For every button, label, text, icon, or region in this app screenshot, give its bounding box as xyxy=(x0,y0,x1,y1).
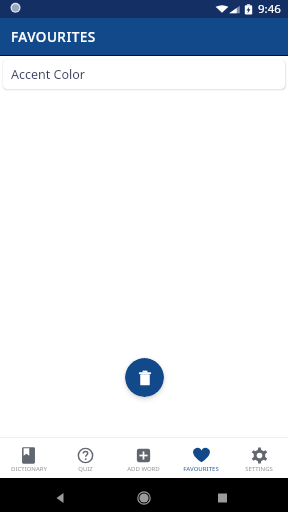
staticText: QUIZ xyxy=(78,465,93,473)
button[interactable]: SETTINGS xyxy=(230,442,288,478)
staticText: DICTIONARY xyxy=(11,465,47,473)
staticText: Accent Color xyxy=(11,66,85,83)
staticText: FAVOURITES xyxy=(183,465,219,473)
staticText: ADD WORD xyxy=(127,465,160,473)
button[interactable]: ADD WORD xyxy=(114,442,172,478)
button[interactable]: QUIZ xyxy=(57,442,114,478)
button[interactable]: FAVOURITES xyxy=(172,442,230,478)
button[interactable]: Accent Color xyxy=(3,60,285,89)
button[interactable]: Delete xyxy=(125,358,164,397)
staticText: SETTINGS xyxy=(245,465,273,473)
button[interactable]: DICTIONARY xyxy=(0,442,57,478)
staticText: 9:46 xyxy=(258,1,281,17)
staticText: FAVOURITES xyxy=(11,28,96,46)
